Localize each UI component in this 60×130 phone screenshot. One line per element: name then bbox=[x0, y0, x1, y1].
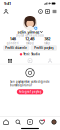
staticText: takipçi bbox=[26, 41, 34, 45]
button[interactable]: 382 bbox=[39, 36, 56, 45]
button[interactable]: Profile bbox=[48, 117, 60, 126]
button[interactable]: Yeni: Studio bbox=[20, 52, 40, 57]
button[interactable]: 12,4B bbox=[21, 36, 39, 45]
staticText: gönderi bbox=[7, 41, 19, 45]
staticText: Fotoğraf paylaş bbox=[19, 90, 41, 93]
staticText: Profili paylaş bbox=[34, 46, 53, 50]
staticText: 382 bbox=[44, 36, 50, 41]
staticText: selin.yilmaz bbox=[17, 29, 39, 35]
staticText: 148 bbox=[10, 36, 16, 41]
staticText: 9:41 bbox=[4, 1, 11, 6]
staticText: Yeni: Studio bbox=[23, 52, 40, 56]
button[interactable]: Threads bbox=[37, 7, 44, 15]
button[interactable]: Posts bbox=[0, 58, 20, 64]
staticText: Profili düzenle bbox=[5, 46, 27, 50]
button[interactable]: 148 bbox=[4, 36, 21, 45]
button[interactable]: Search bbox=[12, 117, 24, 126]
staticText: takip bbox=[44, 41, 50, 45]
button[interactable]: Menu bbox=[51, 7, 58, 15]
button[interactable]: Profili paylaş bbox=[31, 45, 57, 51]
button[interactable]: Fotoğraf paylaş bbox=[17, 89, 43, 94]
button[interactable]: Account bbox=[2, 7, 10, 15]
button[interactable]: New post bbox=[44, 7, 51, 15]
button[interactable]: Home bbox=[0, 117, 12, 126]
staticText: 12,4B bbox=[25, 36, 35, 41]
button[interactable]: Profili düzenle bbox=[3, 45, 29, 51]
button[interactable]: Activity bbox=[36, 117, 48, 126]
button[interactable]: Reels bbox=[24, 117, 36, 126]
staticText: Dijital içerik üreticisi bbox=[16, 34, 44, 37]
staticText: Son paylaşımları yüklediğinde burada gör… bbox=[10, 80, 50, 87]
button[interactable]: Tagged bbox=[40, 58, 60, 64]
button[interactable]: Reels bbox=[20, 58, 40, 64]
